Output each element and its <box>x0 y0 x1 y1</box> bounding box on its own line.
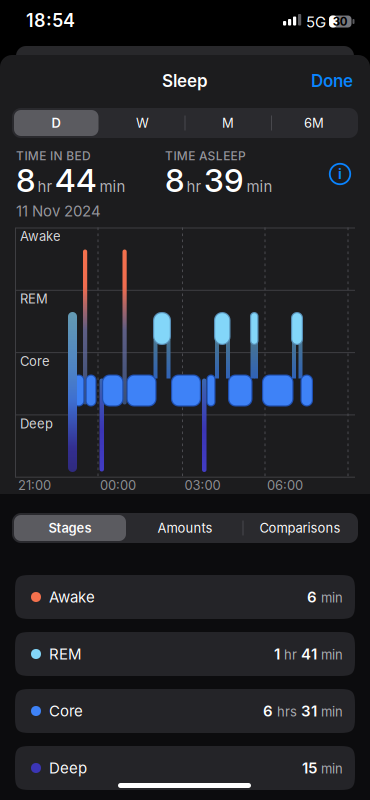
staticText: 31 <box>301 702 317 720</box>
staticText: Deep <box>20 416 53 432</box>
staticText: 39 <box>204 161 244 200</box>
button[interactable]: REM <box>15 632 355 676</box>
staticText: 06:00 <box>267 477 303 493</box>
staticText: W <box>136 115 149 131</box>
staticText: Comparisons <box>259 520 340 536</box>
staticText: M <box>222 115 234 131</box>
staticText: REM <box>49 645 82 663</box>
staticText: 18:54 <box>26 9 75 31</box>
staticText: Deep <box>49 759 87 777</box>
staticText: Awake <box>49 588 95 606</box>
staticText: 6M <box>304 115 324 131</box>
button[interactable]: Comparisons <box>243 513 357 543</box>
staticText: 15 <box>302 759 317 777</box>
staticText: 8 <box>16 161 35 200</box>
staticText: hr <box>37 177 52 196</box>
button[interactable]: Done <box>273 70 353 91</box>
staticText: min <box>321 590 343 606</box>
staticText: min <box>321 647 343 663</box>
staticText: min <box>321 704 343 720</box>
staticText: Core <box>49 702 83 720</box>
staticText: 6 <box>307 588 317 606</box>
button[interactable]: W <box>99 108 185 138</box>
staticText: i <box>338 165 342 182</box>
staticText: REM <box>20 291 48 307</box>
staticText: 41 <box>301 645 317 663</box>
staticText: Done <box>311 70 353 91</box>
staticText: hr <box>186 177 201 196</box>
staticText: Stages <box>48 520 91 536</box>
staticText: min <box>99 177 125 196</box>
staticText: 21:00 <box>18 477 51 493</box>
staticText: Sleep <box>162 70 208 91</box>
button[interactable]: Core <box>15 689 355 733</box>
staticText: 8 <box>165 161 184 200</box>
button[interactable]: Awake <box>15 575 355 619</box>
staticText: min <box>246 177 272 196</box>
staticText: 1 <box>274 645 280 663</box>
staticText: Awake <box>20 228 61 244</box>
button[interactable]: D <box>13 108 99 138</box>
staticText: 11 Nov 2024 <box>16 202 101 220</box>
button[interactable]: 6M <box>271 108 357 138</box>
staticText: 6 <box>263 702 273 720</box>
staticText: hrs <box>277 704 297 720</box>
staticText: 03:00 <box>184 477 220 493</box>
button[interactable]: i <box>329 163 351 185</box>
staticText: min <box>321 761 343 777</box>
staticText: Core <box>20 353 50 369</box>
button[interactable]: Amounts <box>128 513 242 543</box>
button[interactable]: Stages <box>13 513 127 543</box>
button[interactable]: Deep <box>15 746 355 790</box>
staticText: hr <box>284 647 297 663</box>
staticText: 30 <box>333 14 348 28</box>
staticText: 5G <box>306 13 326 31</box>
staticText: Amounts <box>157 520 212 536</box>
staticText: 00:00 <box>100 477 136 493</box>
staticText: D <box>51 115 60 131</box>
staticText: 44 <box>55 161 97 200</box>
staticText: TIME ASLEEP <box>165 148 246 163</box>
button[interactable]: M <box>185 108 271 138</box>
staticText: TIME IN BED <box>16 148 91 163</box>
